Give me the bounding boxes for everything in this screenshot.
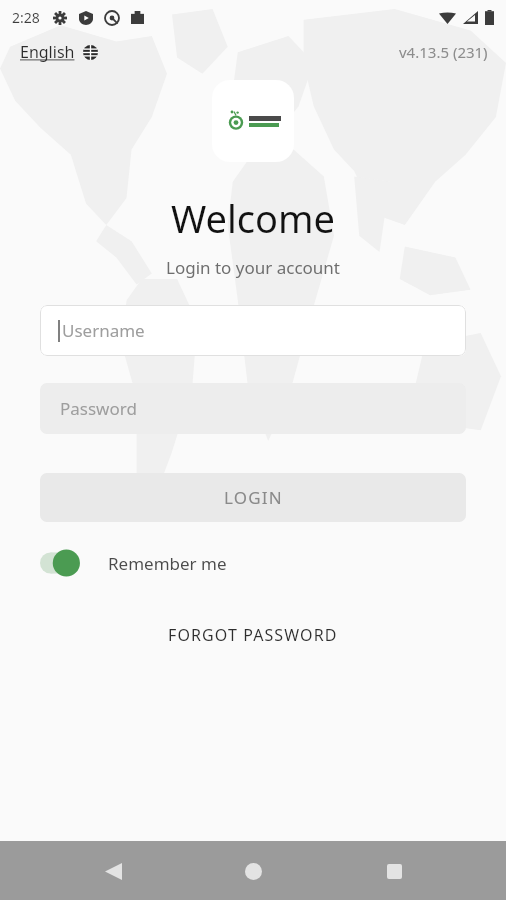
staticText: Remember me [108, 552, 227, 575]
staticText: FORGOT PASSWORD [168, 624, 338, 646]
staticText: English [20, 41, 75, 63]
button[interactable]: Back [85, 843, 141, 899]
button[interactable]: FORGOT PASSWORD [154, 618, 352, 652]
other: Change language [83, 45, 98, 60]
staticText: LOGIN [224, 486, 283, 509]
staticText: Welcome [0, 192, 506, 244]
button[interactable]: Password [40, 383, 466, 434]
button[interactable]: LOGIN [40, 473, 466, 522]
button[interactable]: Home [225, 843, 281, 899]
button[interactable]: Recent apps [366, 843, 422, 899]
button[interactable]: Username [40, 305, 466, 356]
staticText: Login to your account [0, 256, 506, 279]
staticText: v4.13.5 (231) [399, 42, 488, 62]
staticText: Username [62, 319, 145, 342]
button[interactable] [40, 546, 96, 580]
staticText: 2:28 [12, 8, 40, 27]
button[interactable]: English [16, 37, 102, 67]
staticText: Password [60, 397, 137, 420]
